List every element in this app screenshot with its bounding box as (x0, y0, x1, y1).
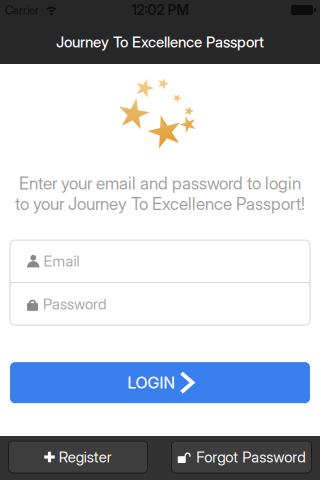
staticText: Register (59, 448, 112, 466)
staticText: LOGIN (127, 373, 174, 392)
staticText: to your Journey To Excellence Passport! (15, 194, 305, 214)
staticText: Journey To Excellence Passport (56, 33, 264, 51)
staticText: Enter your email and password to login (19, 173, 301, 194)
staticText: Carrier (5, 3, 39, 17)
button[interactable]: Password (10, 283, 310, 325)
staticText: Email (43, 252, 79, 270)
button[interactable]: Register (8, 441, 147, 473)
staticText: Password (43, 295, 106, 313)
button[interactable]: Email (10, 240, 310, 282)
staticText: 12:02 PM (131, 1, 188, 18)
button[interactable]: LOGIN (10, 362, 310, 403)
button[interactable]: Forgot Password (171, 441, 311, 473)
staticText: Forgot Password (196, 448, 305, 466)
